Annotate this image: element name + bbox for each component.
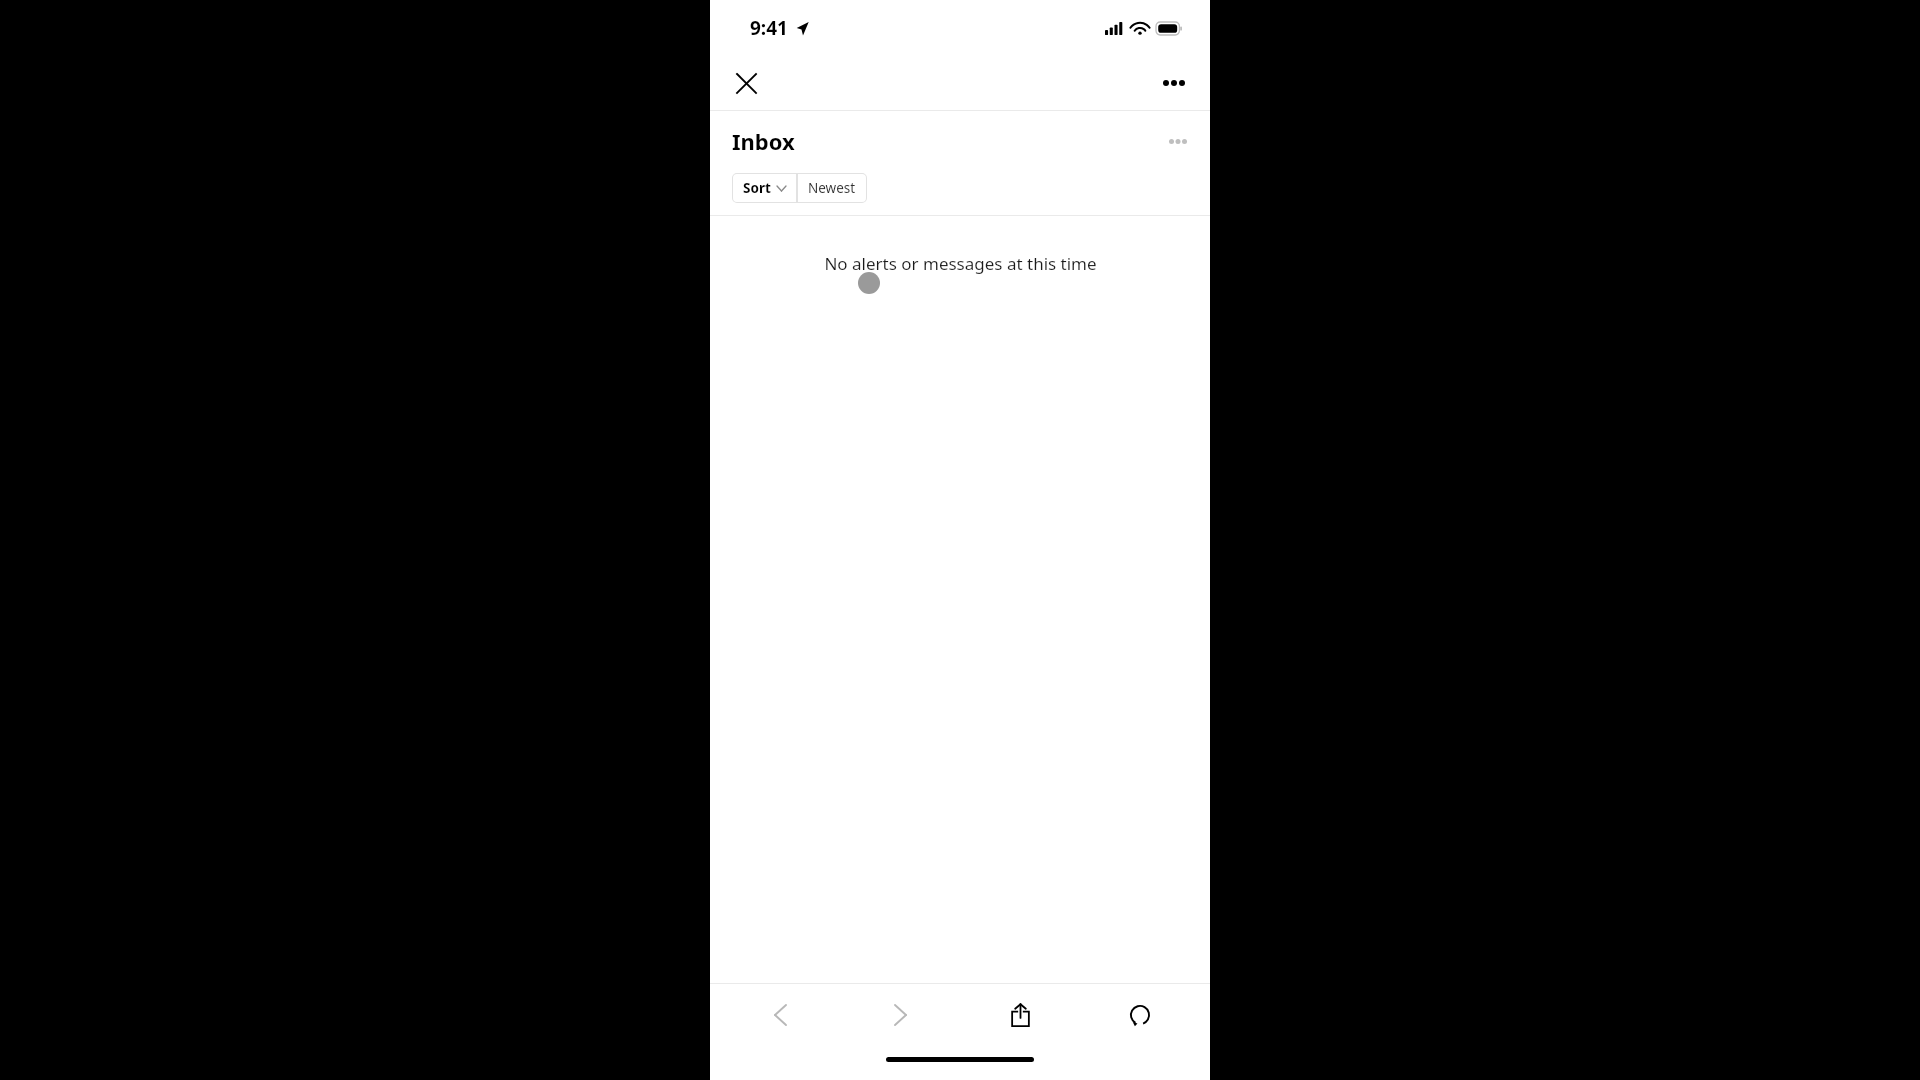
staticText: Newest: [808, 179, 856, 197]
button[interactable]: Forward: [840, 984, 960, 1046]
button[interactable]: Reload: [1080, 984, 1200, 1046]
button[interactable]: Newest: [797, 173, 867, 203]
button[interactable]: Inbox options: [1160, 123, 1196, 159]
button[interactable]: Close: [724, 61, 768, 105]
button[interactable]: Sort: [732, 173, 797, 203]
button[interactable]: Share: [960, 984, 1080, 1046]
button[interactable]: Back: [720, 984, 840, 1046]
staticText: No alerts or messages at this time: [824, 252, 1097, 275]
staticText: Inbox: [732, 126, 795, 156]
staticText: 9:41: [750, 15, 788, 41]
staticText: Sort: [743, 179, 771, 197]
button[interactable]: More options: [1152, 61, 1196, 105]
